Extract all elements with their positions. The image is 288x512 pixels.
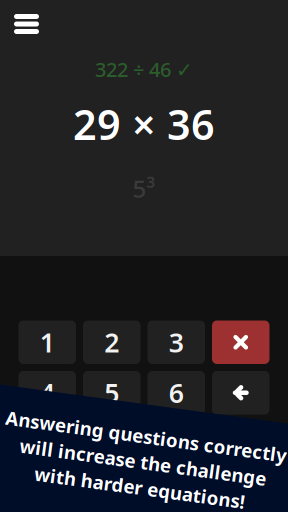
staticText: 8 [104, 425, 119, 461]
button[interactable]: Delete [212, 371, 269, 414]
staticText: Answering questions correctly [1, 424, 285, 449]
button[interactable]: Clear [212, 320, 269, 364]
staticText: 4 [40, 375, 55, 410]
staticText: 6 [169, 375, 184, 410]
button[interactable]: 2 [83, 320, 140, 364]
button[interactable]: 9 [147, 421, 205, 465]
staticText: 1 [40, 324, 55, 360]
button[interactable]: 0 [212, 421, 269, 465]
staticText: 7 [40, 425, 55, 461]
button[interactable]: 7 [18, 421, 76, 465]
staticText: 0 [233, 425, 248, 461]
button[interactable]: 8 [83, 421, 140, 465]
button[interactable]: Menu [0, 0, 53, 48]
staticText: 5³ [132, 172, 155, 204]
staticText: 9 [169, 425, 184, 461]
button[interactable]: 3 [147, 320, 205, 364]
button[interactable]: 4 [18, 371, 76, 414]
staticText: 5 [104, 375, 119, 410]
button[interactable]: 5 [83, 371, 140, 414]
staticText: 2 [104, 324, 119, 360]
staticText: 3 [169, 324, 184, 360]
staticText: will increase the challenge [18, 450, 267, 474]
button[interactable]: 6 [147, 371, 205, 414]
staticText: with harder equations! [37, 475, 249, 500]
staticText: 322 ÷ 46 ✓ [95, 56, 193, 83]
button[interactable]: 1 [18, 320, 76, 364]
staticText: 29 × 36 [73, 97, 215, 151]
